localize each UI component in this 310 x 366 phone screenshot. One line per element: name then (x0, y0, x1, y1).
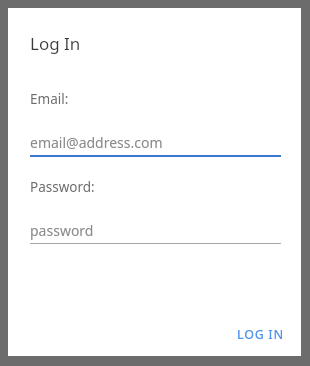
staticText: Email: (30, 90, 69, 108)
button[interactable]: LOG IN (231, 321, 289, 347)
button[interactable]: Password input field (30, 176, 281, 246)
staticText: Log In (30, 32, 81, 55)
staticText: Password: (30, 178, 95, 196)
button[interactable]: Email input field (30, 88, 281, 158)
staticText: password (30, 221, 94, 240)
staticText: LOG IN (237, 326, 284, 343)
staticText: email@address.com (30, 133, 163, 152)
